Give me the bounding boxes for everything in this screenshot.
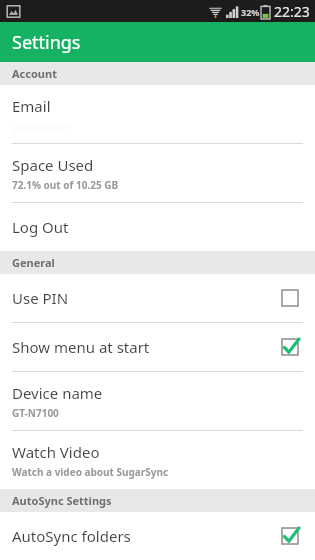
button[interactable]: Checked (277, 334, 303, 360)
button[interactable]: AutoSync folders (0, 512, 315, 560)
staticText: Watch Video (12, 442, 100, 462)
staticText: General (12, 255, 55, 270)
staticText: Show menu at start (12, 337, 150, 357)
button[interactable]: Device name (0, 372, 315, 430)
staticText: 72.1% out of 10.25 GB (12, 178, 119, 192)
button[interactable]: Space Used (0, 144, 315, 202)
staticText: Settings (12, 30, 81, 55)
staticText: Email (12, 96, 51, 116)
staticText: GT-N7100 (12, 406, 59, 420)
staticText: 32% (241, 6, 260, 18)
staticText: AutoSync Settings (12, 493, 112, 508)
staticText: Account (12, 66, 57, 81)
button[interactable]: Settings (0, 22, 315, 62)
button[interactable]: Watch Video (0, 431, 315, 489)
button[interactable]: Checked (277, 523, 303, 549)
button[interactable]: Unchecked (277, 285, 303, 311)
staticText: Watch a video about SugarSync (12, 465, 169, 479)
button[interactable]: Log Out (0, 203, 315, 251)
staticText: Log Out (12, 217, 69, 237)
staticText: Device name (12, 383, 103, 403)
staticText: AutoSync folders (12, 526, 131, 546)
staticText: 22:23 (274, 2, 310, 21)
button[interactable]: Show menu at start (0, 323, 315, 371)
button[interactable]: Email (0, 85, 315, 143)
button[interactable]: Use PIN (0, 274, 315, 322)
staticText: Space Used (12, 155, 94, 175)
staticText: Use PIN (12, 288, 69, 308)
